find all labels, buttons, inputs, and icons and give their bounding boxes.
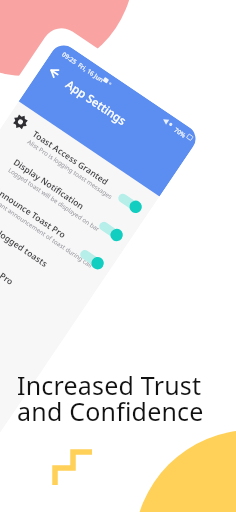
button[interactable] (0, 0, 236, 512)
other: Increased Trust and Confidence onboardin… (0, 0, 236, 512)
